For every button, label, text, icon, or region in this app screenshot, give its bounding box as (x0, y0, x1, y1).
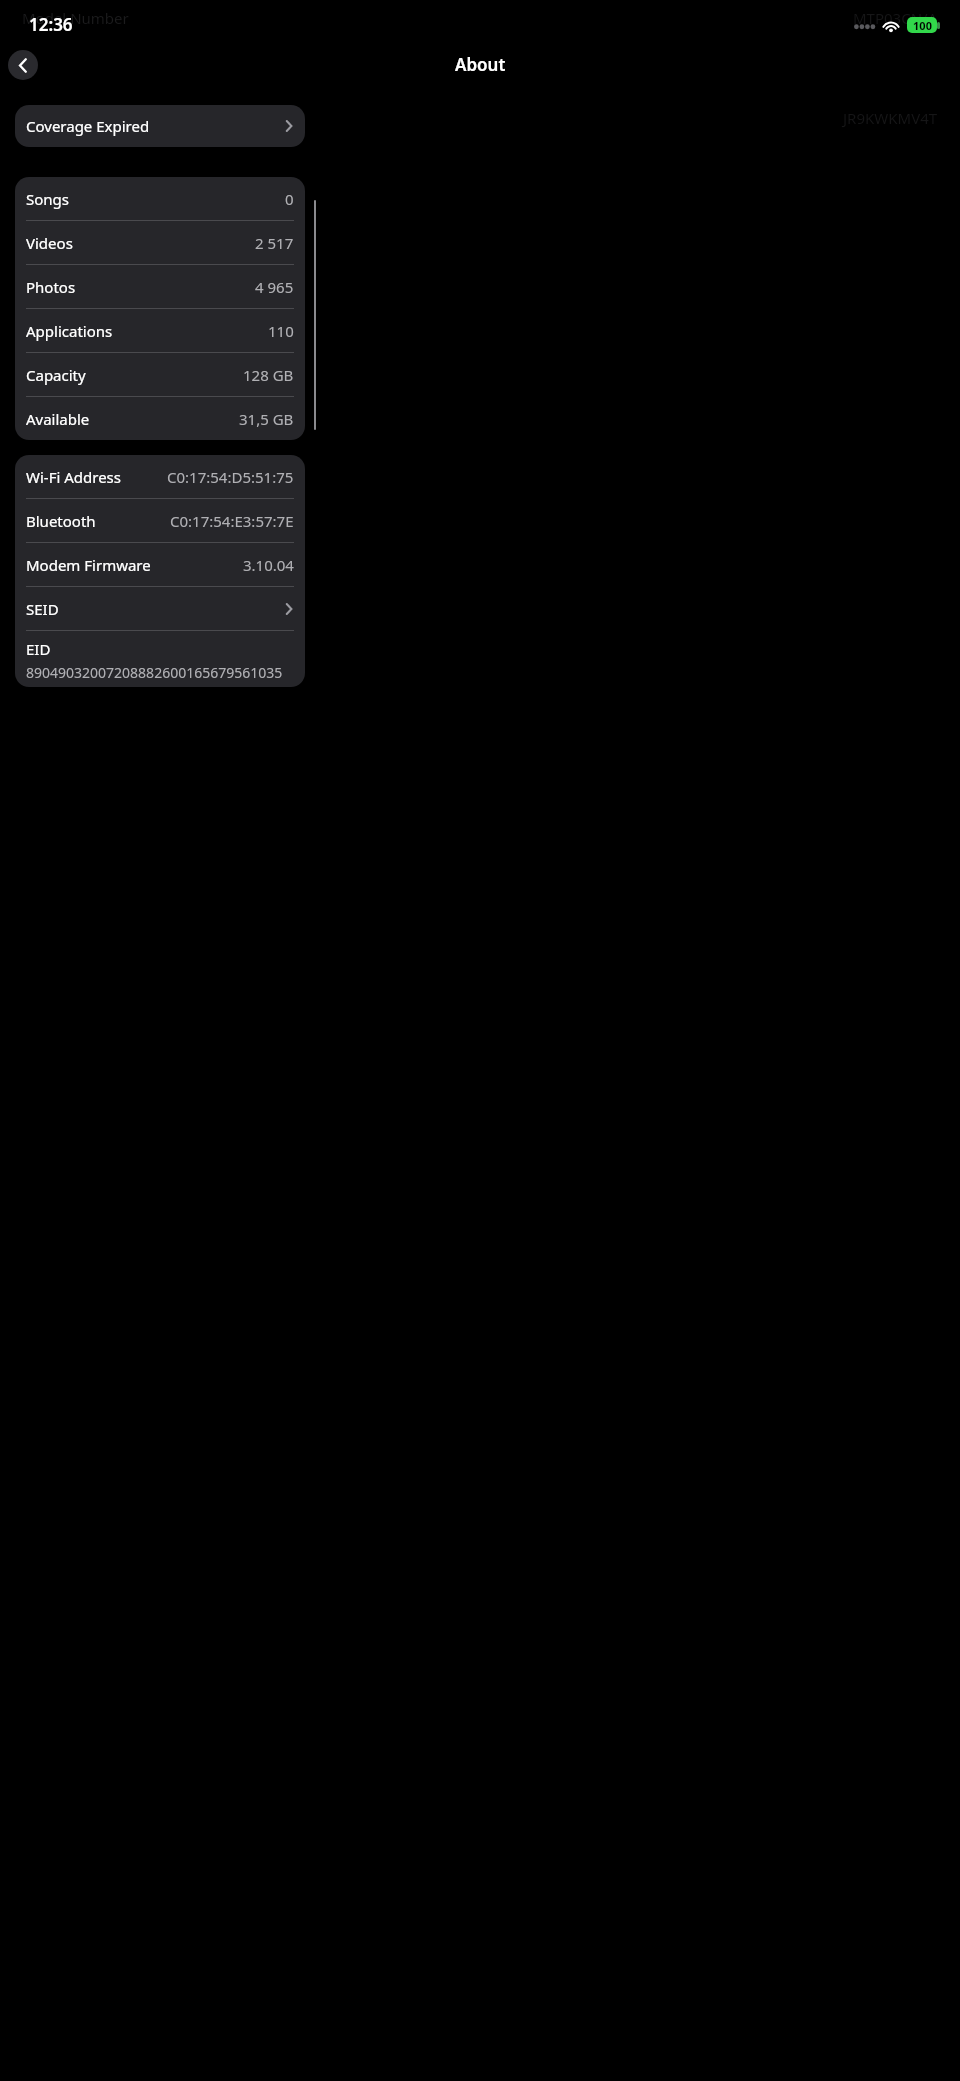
staticText: 110 (268, 321, 294, 341)
button[interactable]: Applications (15, 309, 305, 352)
staticText: 31,5 GB (239, 409, 294, 429)
button[interactable]: Available (15, 397, 305, 440)
button[interactable]: Videos (15, 221, 305, 264)
staticText: erial Number (22, 108, 116, 128)
staticText: 128 GB (243, 365, 294, 385)
button[interactable]: SEID (15, 587, 305, 630)
staticText: JR9KWKMV4T (843, 108, 938, 128)
staticText: 3.10.04 (243, 555, 294, 575)
staticText: 2 517 (255, 233, 294, 253)
button[interactable]: Coverage Expired (15, 105, 305, 147)
staticText: C0:17:54:D5:51:75 (167, 467, 294, 487)
staticText: Capacity (26, 365, 86, 385)
staticText: 4 965 (255, 277, 294, 297)
staticText: Coverage Expired (26, 116, 150, 136)
staticText: Songs (26, 189, 69, 209)
staticText: Model Number (22, 8, 129, 28)
button[interactable]: EID (15, 631, 305, 687)
staticText: Modem Firmware (26, 555, 151, 575)
staticText: Wi-Fi Address (26, 467, 121, 487)
staticText: MTP03CN/A (853, 8, 938, 28)
staticText: Videos (26, 233, 73, 253)
staticText: About (455, 53, 506, 76)
button[interactable]: Songs (15, 177, 305, 220)
staticText: 100 (913, 18, 932, 33)
staticText: Applications (26, 321, 113, 341)
button[interactable]: Wi-Fi Address (15, 455, 305, 498)
button[interactable]: Photos (15, 265, 305, 308)
button[interactable]: Back (8, 50, 38, 80)
staticText: 0 (285, 189, 294, 209)
button[interactable]: Capacity (15, 353, 305, 396)
staticText: Photos (26, 277, 76, 297)
staticText: Bluetooth (26, 511, 96, 531)
staticText: 89049032007208882600165679561035 (26, 663, 283, 682)
button[interactable]: Modem Firmware (15, 543, 305, 586)
staticText: 12:36 (29, 13, 73, 36)
staticText: SEID (26, 599, 59, 619)
button[interactable]: Bluetooth (15, 499, 305, 542)
staticText: EID (26, 639, 51, 659)
staticText: Available (26, 409, 90, 429)
staticText: C0:17:54:E3:57:7E (170, 511, 294, 531)
